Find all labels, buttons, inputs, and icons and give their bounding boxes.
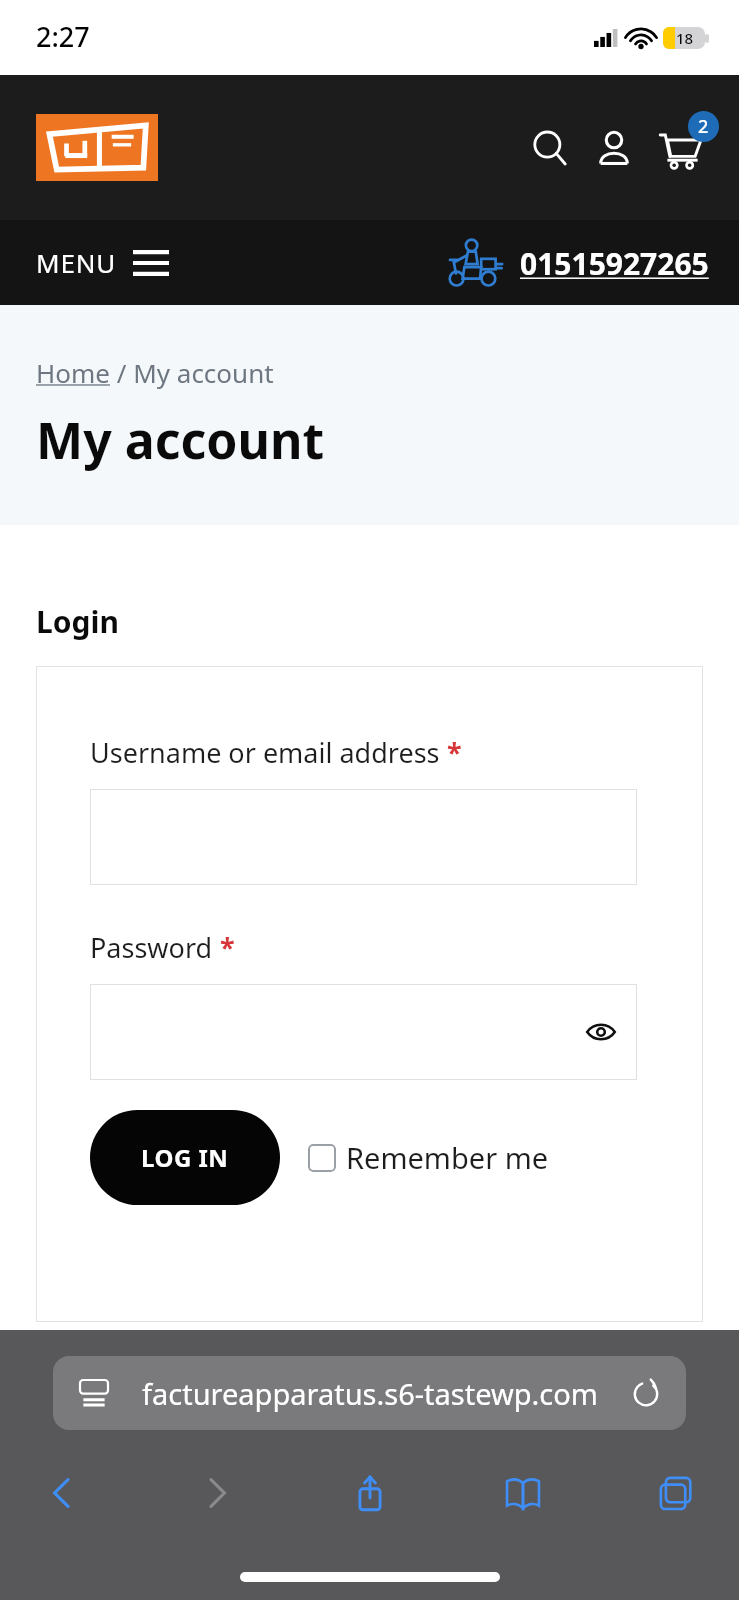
button[interactable]: Share: [341, 1464, 399, 1522]
staticText: Remember me: [346, 1138, 549, 1177]
button[interactable]: MENU: [36, 245, 169, 280]
staticText: 2:27: [36, 18, 90, 55]
staticText: 2: [698, 114, 709, 139]
staticText: *: [440, 734, 462, 771]
staticText: 01515927265: [520, 243, 709, 284]
staticText: 18: [676, 28, 694, 48]
staticText: MENU: [36, 245, 117, 280]
button[interactable]: Cart, 2 items: [649, 117, 711, 179]
staticText: My account: [36, 406, 325, 474]
button[interactable]: Tabs: [647, 1464, 705, 1522]
button[interactable]: Reload: [628, 1375, 664, 1411]
button[interactable]: My account: [585, 119, 643, 177]
staticText: LOG IN: [141, 1141, 229, 1174]
staticText: Login: [36, 601, 119, 642]
button[interactable]: Home logo: [36, 114, 158, 181]
button[interactable]: Back: [34, 1464, 92, 1522]
staticText: *: [213, 929, 235, 966]
button[interactable]: Bookmarks: [494, 1464, 552, 1522]
other: Page settings: [77, 1376, 111, 1410]
staticText: Username or email address: [90, 734, 440, 771]
button[interactable]: Show password: [90, 984, 637, 1080]
staticText: / My account: [110, 355, 274, 390]
button[interactable]: LOG IN: [90, 1110, 280, 1205]
button[interactable]: 01515927265: [444, 237, 709, 289]
button[interactable]: Home: [36, 355, 110, 390]
button[interactable]: Search: [521, 119, 579, 177]
button[interactable]: Forward: [187, 1464, 245, 1522]
button[interactable]: Show password: [579, 1010, 623, 1054]
staticText: factureapparatus.s6-tastewp.com: [142, 1374, 598, 1413]
staticText: Password: [90, 929, 213, 966]
button[interactable]: Remember me: [308, 1138, 549, 1177]
button[interactable]: [90, 789, 637, 885]
button[interactable]: Page settings: [53, 1356, 686, 1430]
